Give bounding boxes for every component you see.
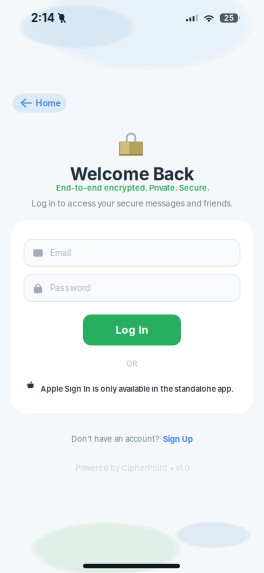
staticText: End-to-end encrypted. Private. Secure. (56, 183, 209, 193)
staticText: Don't have an account? (71, 434, 159, 444)
staticText: Apple Sign In is only available in the s… (40, 384, 233, 393)
staticText: Log In (115, 323, 148, 336)
button[interactable]: Home (12, 93, 66, 112)
staticText: Log in to access your secure messages an… (31, 198, 232, 208)
staticText: 2:14 (31, 11, 55, 25)
staticText: Welcome Back (70, 163, 194, 184)
button[interactable]: Log In (83, 314, 181, 345)
staticText: Email (50, 248, 71, 258)
staticText: Home (35, 98, 60, 108)
staticText: Password (50, 283, 90, 293)
staticText: Powered by CipherPoint • v1.0 (75, 463, 189, 473)
staticText: Sign Up (163, 434, 193, 444)
staticText: OR (126, 359, 137, 368)
button[interactable]: Password (24, 274, 240, 301)
button[interactable]: Email (24, 239, 240, 266)
button[interactable]: Sign Up (163, 434, 193, 444)
staticText: 25 (224, 13, 234, 22)
